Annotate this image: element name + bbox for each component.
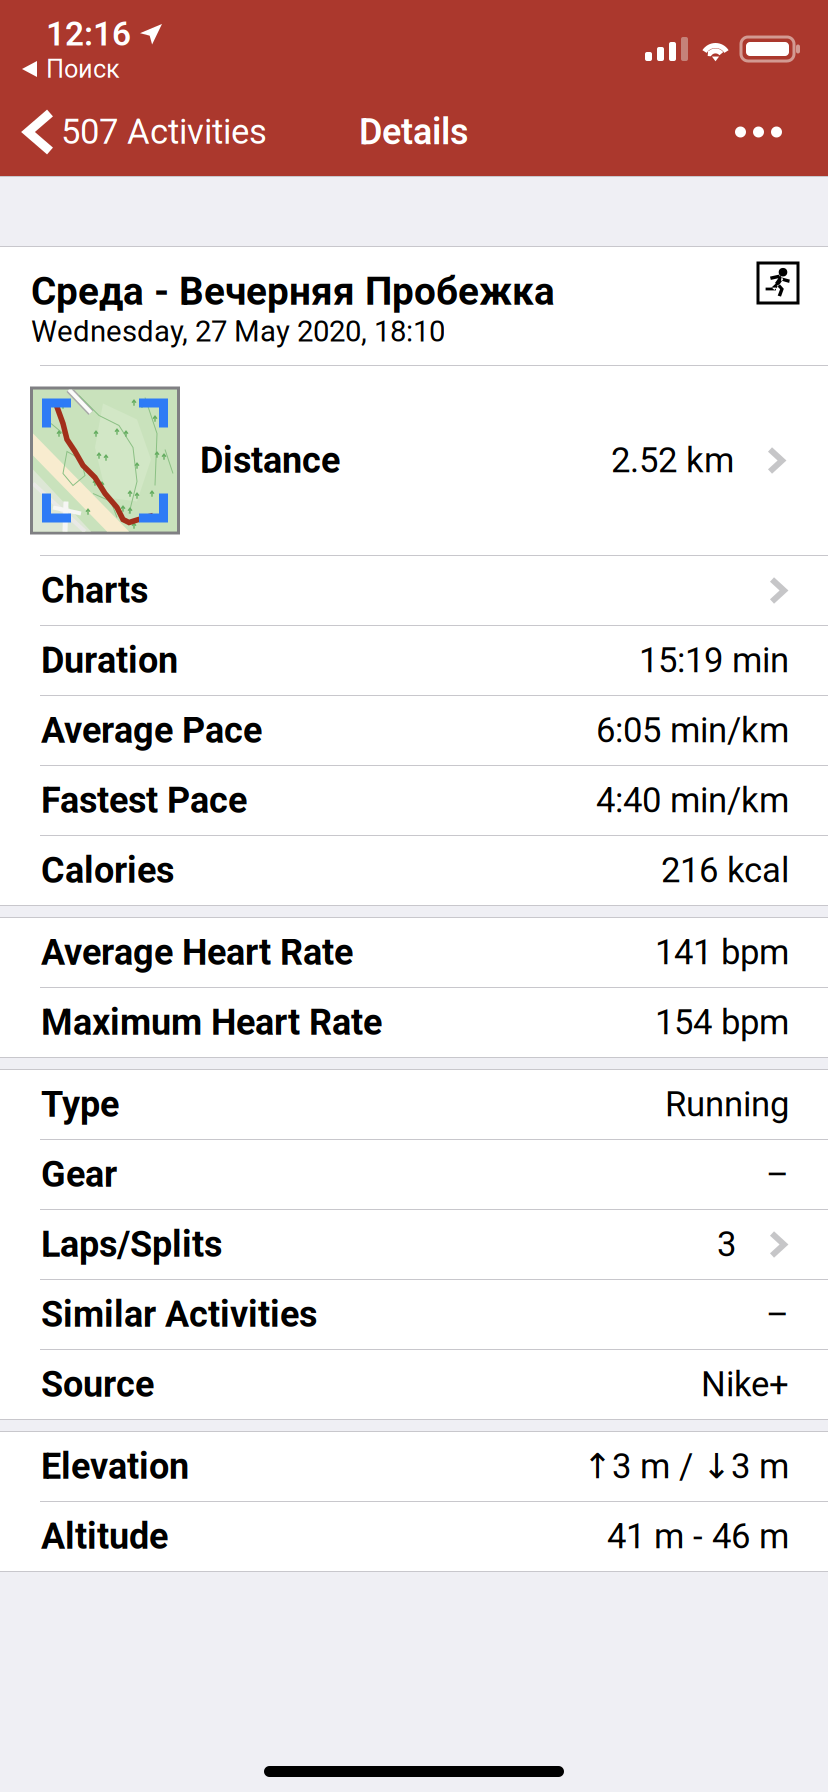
- staticText: Average Pace: [41, 709, 262, 752]
- button[interactable]: Source: [0, 1350, 828, 1419]
- staticText: Nike+: [701, 1364, 789, 1405]
- staticText: 12:16: [46, 14, 131, 54]
- staticText: 15:19 min: [639, 640, 789, 681]
- staticText: Laps/Splits: [41, 1223, 222, 1266]
- staticText: 41 m - 46 m: [607, 1516, 789, 1557]
- staticText: Similar Activities: [41, 1293, 317, 1336]
- button[interactable]: Calories: [0, 836, 828, 905]
- staticText: Charts: [41, 569, 148, 612]
- staticText: Wednesday, 27 May 2020, 18:10: [31, 314, 445, 349]
- button[interactable]: Average Pace: [0, 696, 828, 765]
- button[interactable]: Type: [0, 1070, 828, 1139]
- staticText: Fastest Pace: [41, 779, 247, 822]
- staticText: –: [766, 1154, 789, 1195]
- button[interactable]: Similar Activities: [0, 1280, 828, 1349]
- staticText: Altitude: [41, 1515, 168, 1558]
- button[interactable]: More options: [735, 88, 828, 176]
- staticText: Source: [41, 1363, 154, 1406]
- button[interactable]: Altitude: [0, 1502, 828, 1571]
- staticText: Running: [665, 1084, 789, 1125]
- staticText: Gear: [41, 1153, 117, 1196]
- staticText: 6:05 min/km: [596, 710, 789, 751]
- staticText: ↑3 m / ↓3 m: [583, 1446, 789, 1487]
- button[interactable]: Distance: [0, 366, 828, 555]
- staticText: Поиск: [46, 54, 120, 84]
- staticText: 4:40 min/km: [596, 780, 789, 821]
- staticText: –: [766, 1294, 789, 1335]
- button[interactable]: Average Heart Rate: [0, 918, 828, 987]
- button[interactable]: 507 Activities: [0, 88, 267, 176]
- staticText: 3: [717, 1224, 736, 1265]
- staticText: 216 kcal: [661, 850, 789, 891]
- button[interactable]: Gear: [0, 1140, 828, 1209]
- staticText: 154 bpm: [655, 1002, 789, 1043]
- button[interactable]: Maximum Heart Rate: [0, 988, 828, 1057]
- staticText: Average Heart Rate: [41, 931, 353, 974]
- staticText: Details: [359, 111, 469, 153]
- staticText: Среда - Вечерняя Пробежка: [31, 269, 555, 314]
- button[interactable]: Fastest Pace: [0, 766, 828, 835]
- staticText: Duration: [41, 639, 178, 682]
- staticText: Distance: [200, 439, 340, 482]
- button[interactable]: Laps/Splits: [0, 1210, 828, 1279]
- staticText: Elevation: [41, 1445, 189, 1488]
- staticText: Type: [41, 1083, 119, 1126]
- staticText: Maximum Heart Rate: [41, 1001, 382, 1044]
- staticText: 141 bpm: [655, 932, 789, 973]
- button[interactable]: Charts: [0, 556, 828, 625]
- staticText: 507 Activities: [61, 112, 267, 152]
- button[interactable]: Elevation: [0, 1432, 828, 1501]
- button[interactable]: Duration: [0, 626, 828, 695]
- staticText: 2.52 km: [611, 440, 734, 481]
- staticText: Calories: [41, 849, 174, 892]
